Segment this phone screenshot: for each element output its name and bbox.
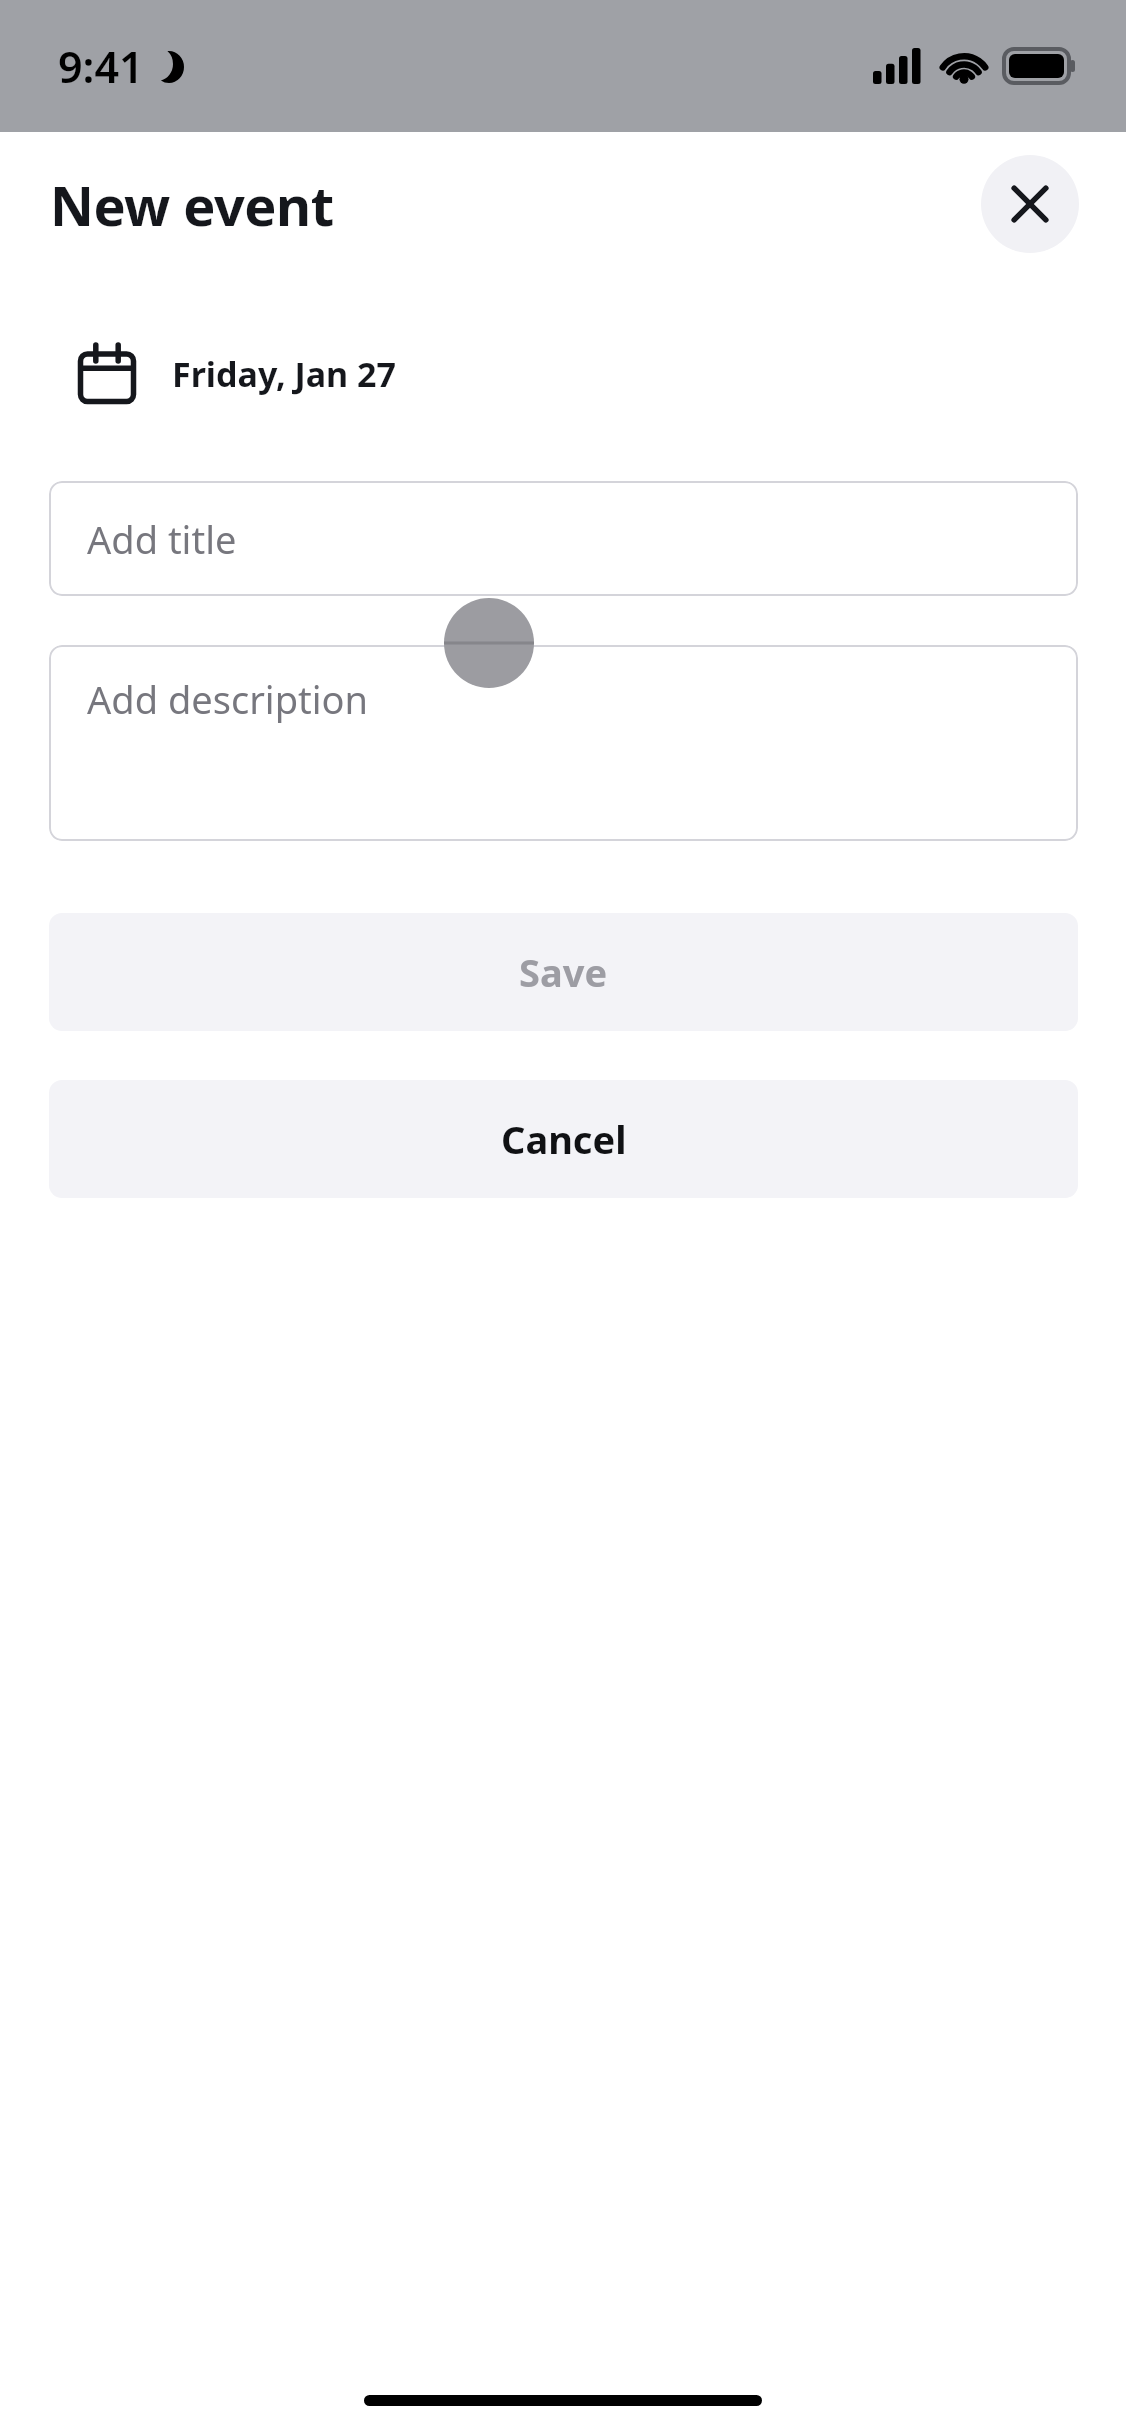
staticText: Save: [519, 946, 608, 998]
button[interactable]: Add description: [49, 645, 1078, 841]
staticText: 9:41: [58, 37, 144, 96]
button[interactable]: Resize: [444, 598, 534, 688]
staticText: New event: [50, 168, 334, 242]
staticText: Cancel: [501, 1113, 627, 1165]
button[interactable]: Add title: [49, 481, 1078, 596]
button[interactable]: Friday, Jan 27: [49, 330, 396, 418]
button[interactable]: Cancel: [49, 1080, 1078, 1198]
staticText: Add title: [87, 513, 237, 565]
staticText: Add description: [87, 673, 369, 725]
button[interactable]: Save: [49, 913, 1078, 1031]
button[interactable]: Close: [981, 155, 1079, 253]
staticText: Friday, Jan 27: [172, 351, 396, 397]
